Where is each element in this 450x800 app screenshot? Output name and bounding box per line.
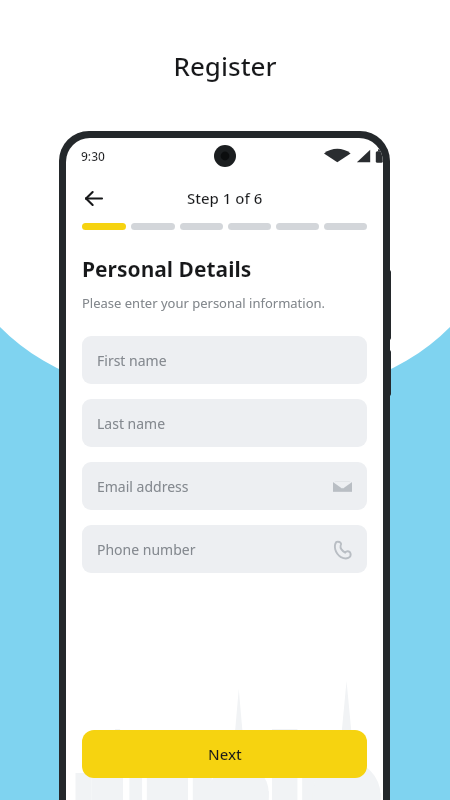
button[interactable]: First name (82, 336, 367, 384)
staticText: Please enter your personal information. (82, 294, 326, 312)
staticText: Step 1 of 6 (187, 188, 263, 208)
staticText: 9:30 (81, 148, 105, 164)
button[interactable]: Email address (82, 462, 367, 510)
button[interactable]: Log In (290, 798, 333, 800)
staticText: Personal Details (82, 255, 252, 284)
staticText: Phone number (97, 540, 196, 559)
staticText: Register (173, 48, 277, 83)
staticText: Last name (97, 414, 166, 433)
button[interactable]: Next (82, 730, 367, 778)
staticText: Already have an account? (116, 798, 290, 800)
staticText: Next (208, 744, 242, 764)
staticText: First name (97, 351, 167, 370)
staticText: Email address (97, 477, 189, 496)
button[interactable]: Last name (82, 399, 367, 447)
staticText: Log In (290, 798, 333, 800)
button[interactable]: Back (76, 181, 110, 215)
button[interactable]: Phone number (82, 525, 367, 573)
